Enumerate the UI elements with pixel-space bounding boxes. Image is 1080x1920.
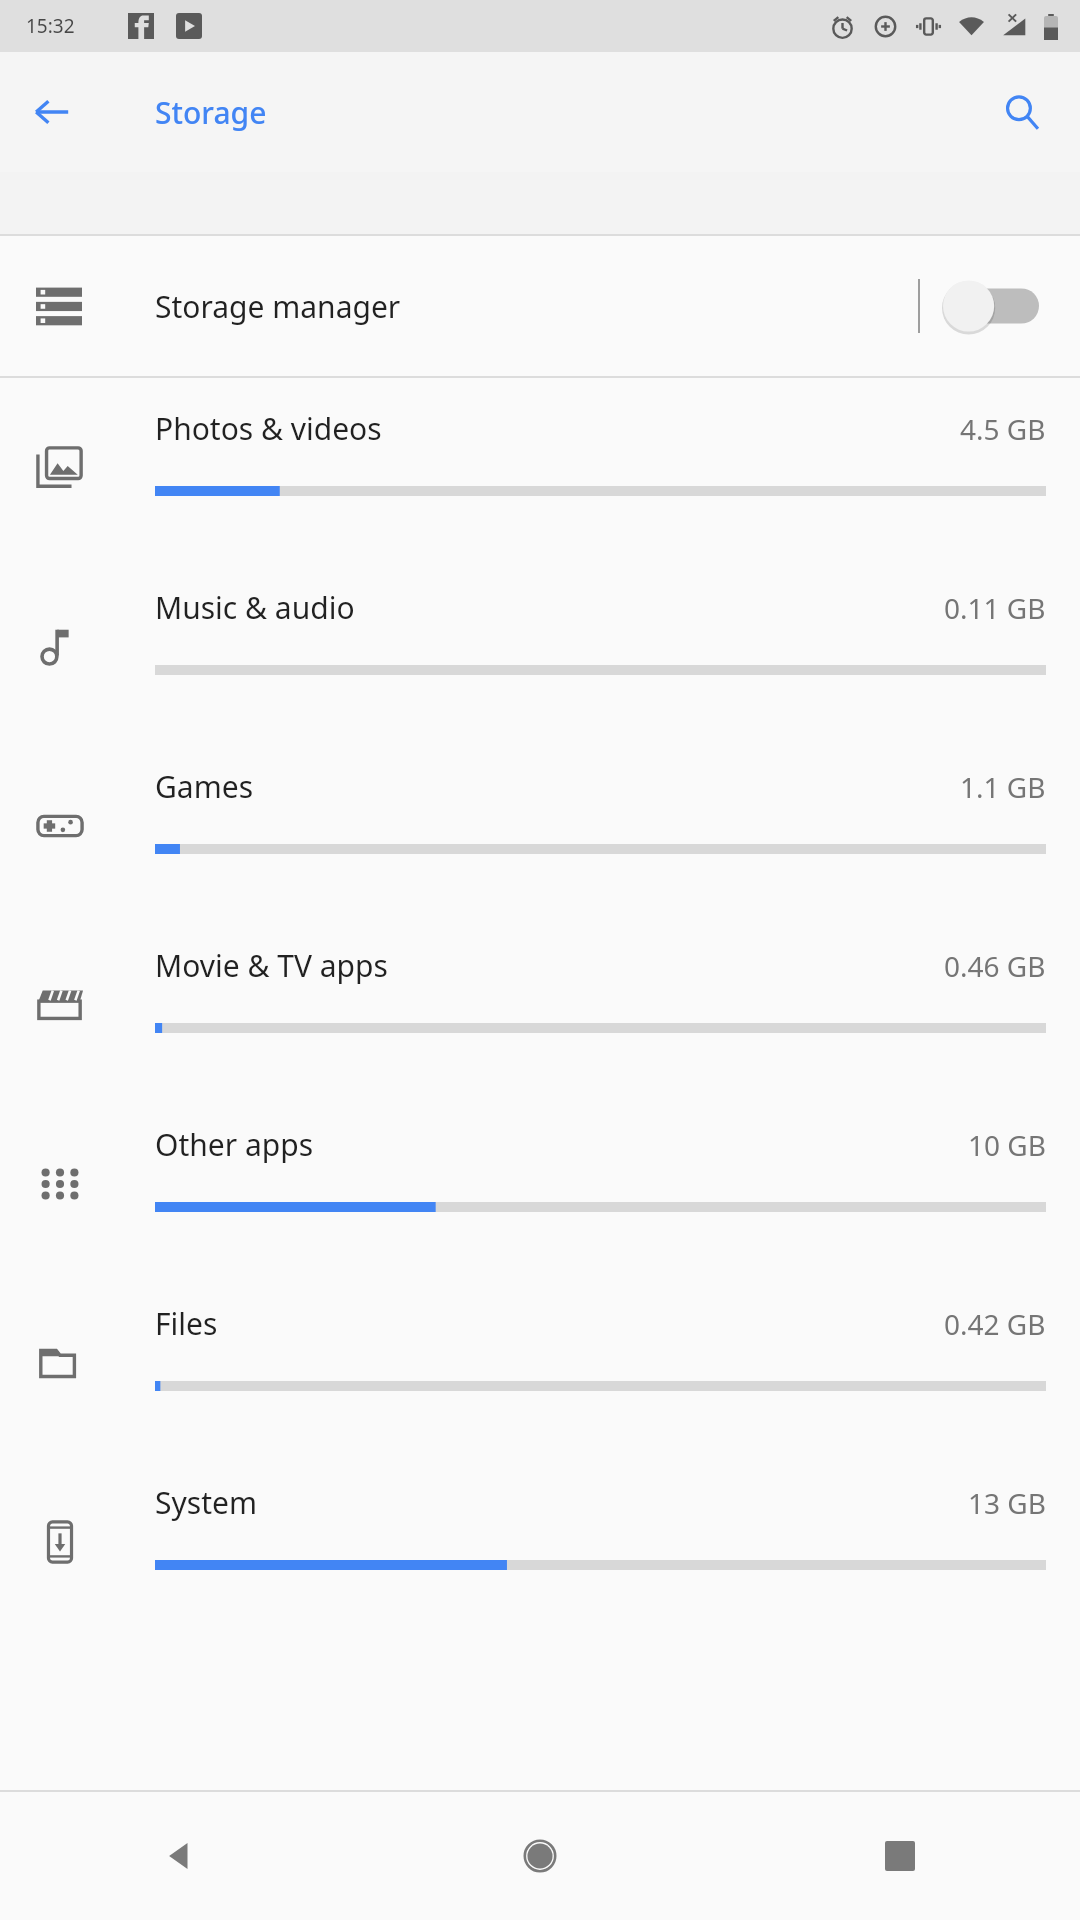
- button[interactable]: Home: [360, 1792, 720, 1920]
- staticText: 13 GB: [968, 1484, 1046, 1522]
- staticText: 10 GB: [968, 1126, 1046, 1164]
- staticText: 4.5 GB: [960, 410, 1046, 448]
- button[interactable]: Games: [0, 736, 1080, 915]
- staticText: Games: [155, 766, 254, 807]
- button[interactable]: Movie & TV apps: [0, 915, 1080, 1094]
- staticText: 15:32: [26, 13, 75, 39]
- button[interactable]: Storage manager toggle: [940, 266, 1050, 346]
- staticText: 0.42 GB: [944, 1305, 1046, 1343]
- button[interactable]: Back: [0, 1792, 360, 1920]
- staticText: 0.11 GB: [944, 589, 1046, 627]
- button[interactable]: System: [0, 1452, 1080, 1631]
- button[interactable]: Files: [0, 1273, 1080, 1452]
- button[interactable]: Back: [14, 74, 90, 150]
- button[interactable]: Photos & videos: [0, 378, 1080, 557]
- staticText: Storage: [155, 92, 267, 133]
- staticText: Movie & TV apps: [155, 945, 388, 986]
- button[interactable]: Search: [984, 74, 1060, 150]
- staticText: Storage manager: [155, 286, 401, 327]
- staticText: Music & audio: [155, 587, 355, 628]
- button[interactable]: Other apps: [0, 1094, 1080, 1273]
- staticText: Photos & videos: [155, 408, 382, 449]
- staticText: 0.46 GB: [944, 947, 1046, 985]
- button[interactable]: Storage manager: [0, 236, 1080, 376]
- button[interactable]: Recent apps: [720, 1792, 1080, 1920]
- staticText: 1.1 GB: [960, 768, 1046, 806]
- staticText: Other apps: [155, 1124, 314, 1165]
- staticText: Files: [155, 1303, 218, 1344]
- staticText: System: [155, 1482, 257, 1523]
- button[interactable]: Music & audio: [0, 557, 1080, 736]
